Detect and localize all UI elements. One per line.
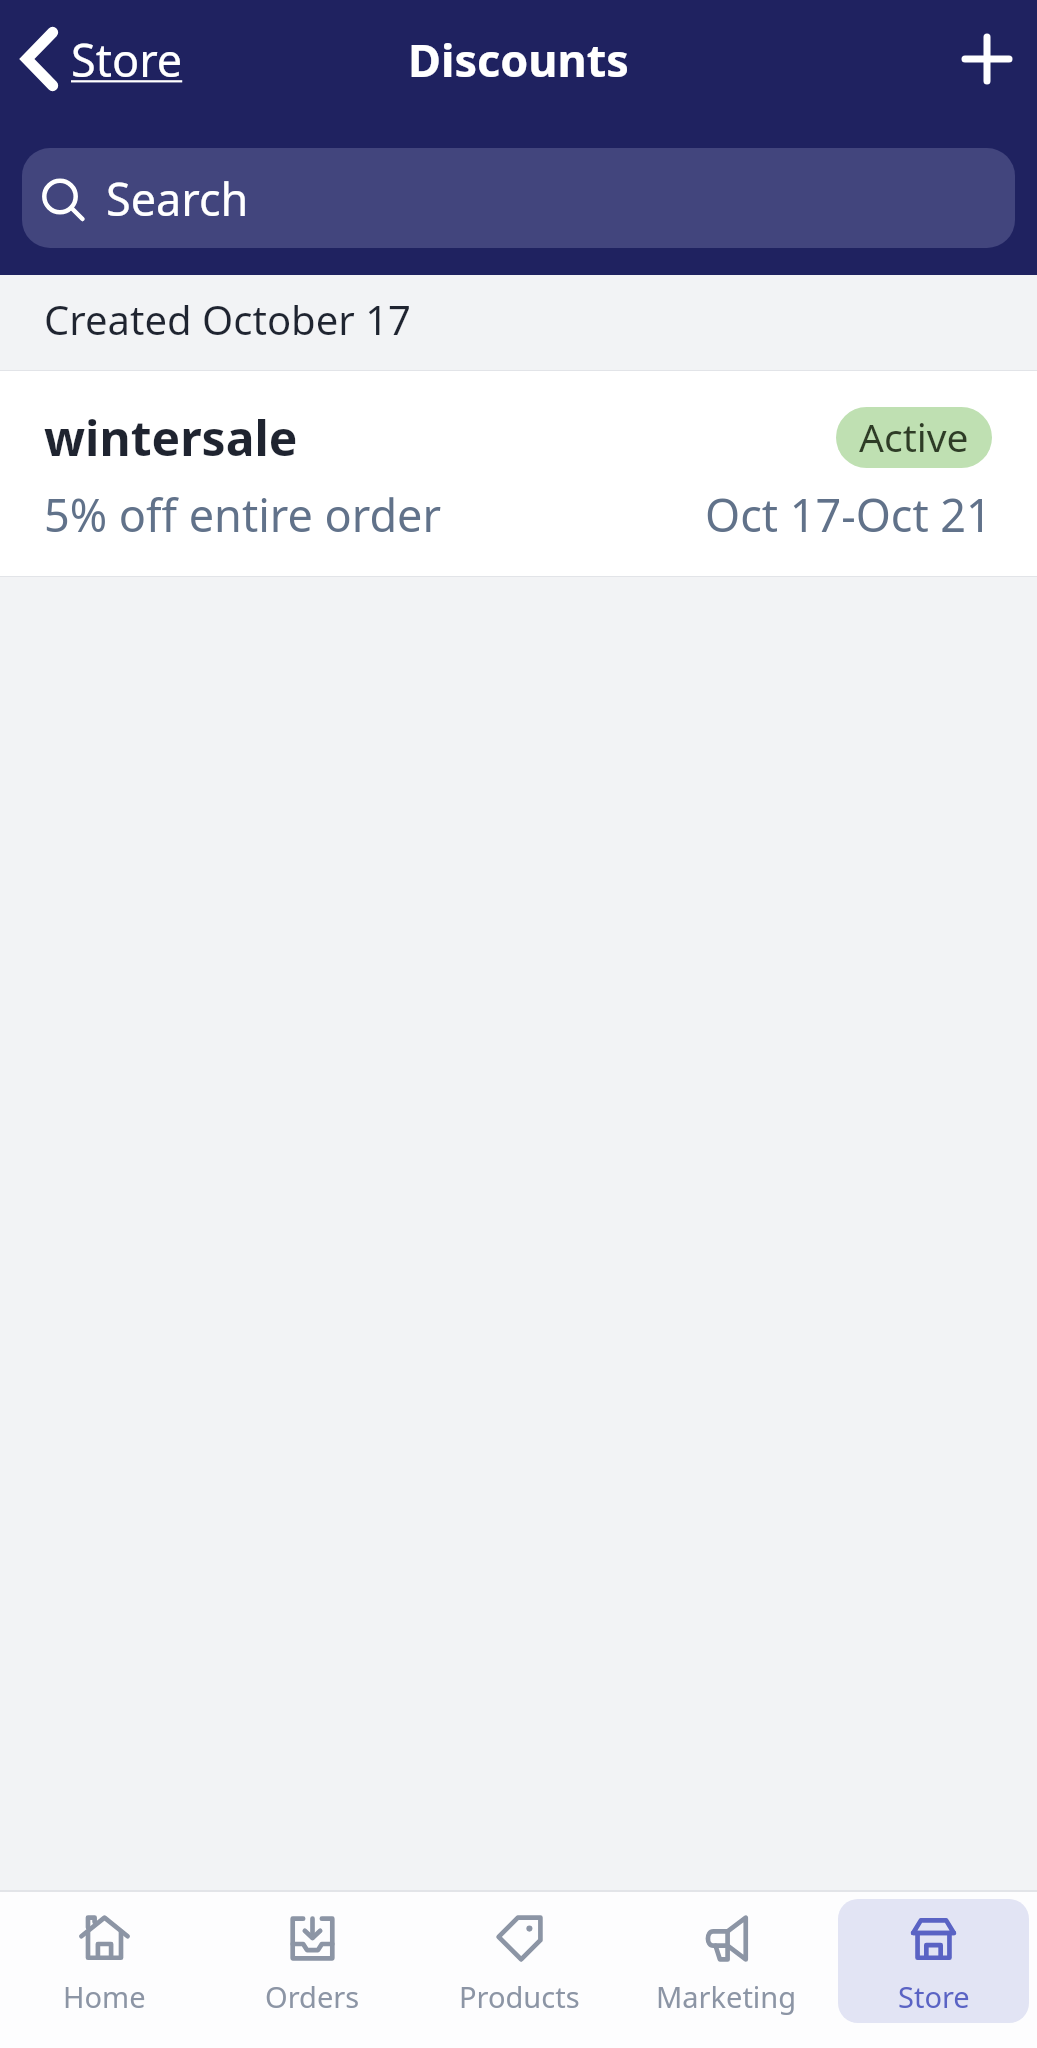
button[interactable]: wintersale (0, 371, 1037, 576)
button[interactable]: Add discount (965, 37, 1037, 81)
staticText: Search (106, 168, 249, 229)
staticText: Discounts (408, 29, 629, 90)
staticText: 5% off entire order (44, 484, 442, 545)
staticText: Store (898, 1977, 970, 2016)
staticText: wintersale (44, 405, 298, 470)
staticText: Created October 17 (44, 292, 411, 346)
button[interactable]: Store (838, 1899, 1029, 2023)
staticText: Marketing (656, 1977, 797, 2016)
staticText: Oct 17-Oct 21 (705, 484, 992, 545)
button[interactable]: Search (22, 148, 1015, 248)
staticText: Orders (265, 1977, 360, 2016)
button[interactable]: Store (0, 20, 195, 98)
button[interactable]: Products (424, 1899, 615, 2023)
staticText: Products (459, 1977, 580, 2016)
button[interactable]: Home (8, 1899, 200, 2023)
staticText: Active (859, 410, 969, 463)
button[interactable]: Orders (216, 1899, 408, 2023)
staticText: Home (63, 1977, 146, 2016)
staticText: Store (71, 29, 183, 90)
button[interactable]: Marketing (631, 1899, 822, 2023)
